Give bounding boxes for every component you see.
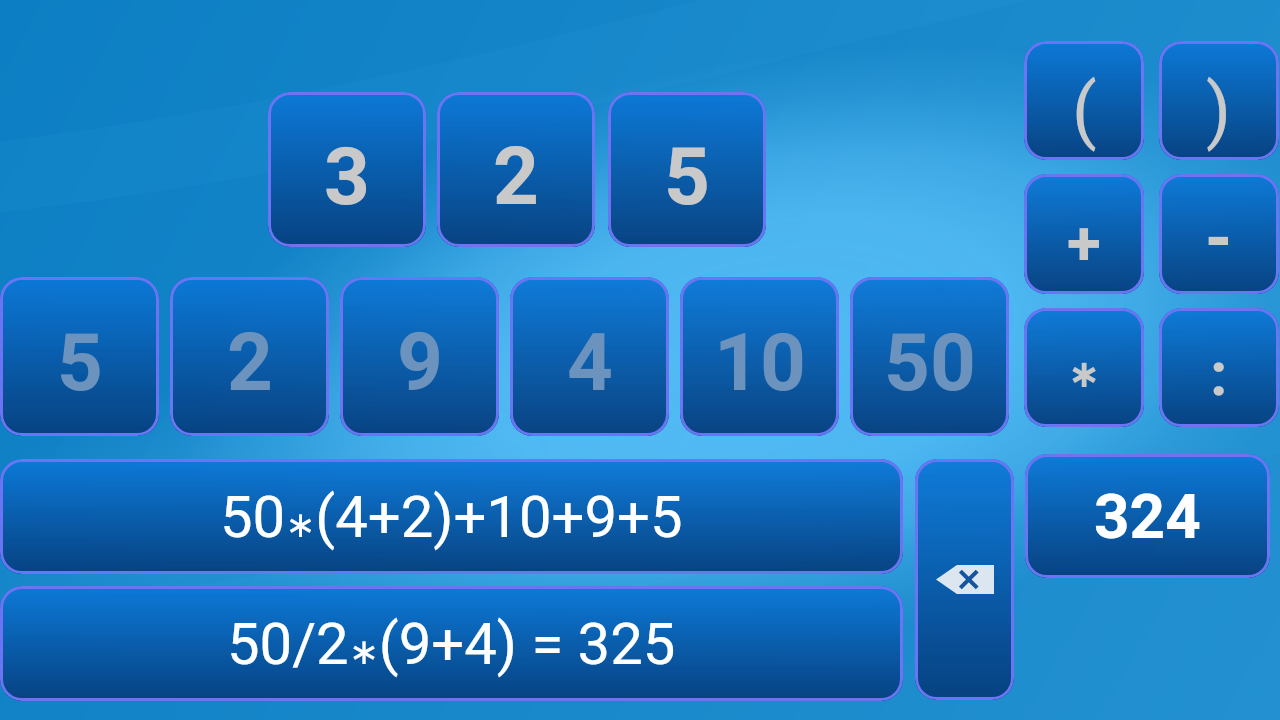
staticText: 2 <box>227 316 273 410</box>
staticText: ) <box>1206 68 1232 152</box>
staticText: ∗ <box>1068 351 1101 396</box>
button[interactable]: : <box>1159 308 1279 427</box>
staticText: 3 <box>324 130 370 224</box>
button[interactable]: 2 <box>170 277 329 436</box>
button[interactable]: + <box>1024 174 1144 294</box>
button[interactable]: 2 <box>437 92 595 247</box>
staticText: 50/2∗(9+4) = 325 <box>227 610 676 678</box>
staticText: 50∗(4+2)+10+9+5 <box>220 483 683 551</box>
button[interactable]: ∗ <box>1024 308 1144 427</box>
button[interactable]: 50∗(4+2)+10+9+5 <box>0 459 903 574</box>
button[interactable]: - <box>1159 174 1279 294</box>
staticText: 9 <box>397 316 443 410</box>
staticText: 10 <box>714 316 806 410</box>
staticText: 2 <box>493 130 539 224</box>
staticText: 4 <box>567 316 613 410</box>
button[interactable]: 3 <box>268 92 426 247</box>
staticText: 5 <box>664 130 710 224</box>
staticText: 5 <box>57 316 103 410</box>
staticText: : <box>1210 337 1228 410</box>
button[interactable]: 50 <box>850 277 1009 436</box>
button[interactable]: Backspace <box>915 459 1014 700</box>
button[interactable]: 50/2∗(9+4) = 325 <box>0 586 903 701</box>
button[interactable]: 5 <box>0 277 159 436</box>
button[interactable]: 5 <box>608 92 766 247</box>
button[interactable]: 10 <box>680 277 839 436</box>
staticText: - <box>1205 197 1233 279</box>
staticText: + <box>1067 206 1101 279</box>
staticText: 324 <box>1094 480 1201 553</box>
button[interactable]: 9 <box>340 277 499 436</box>
button[interactable]: ( <box>1024 41 1144 160</box>
button[interactable]: 324 <box>1025 454 1270 578</box>
staticText: 50 <box>884 316 976 410</box>
staticText: ( <box>1072 68 1097 152</box>
button[interactable]: 4 <box>510 277 669 436</box>
button[interactable]: ) <box>1159 41 1279 160</box>
